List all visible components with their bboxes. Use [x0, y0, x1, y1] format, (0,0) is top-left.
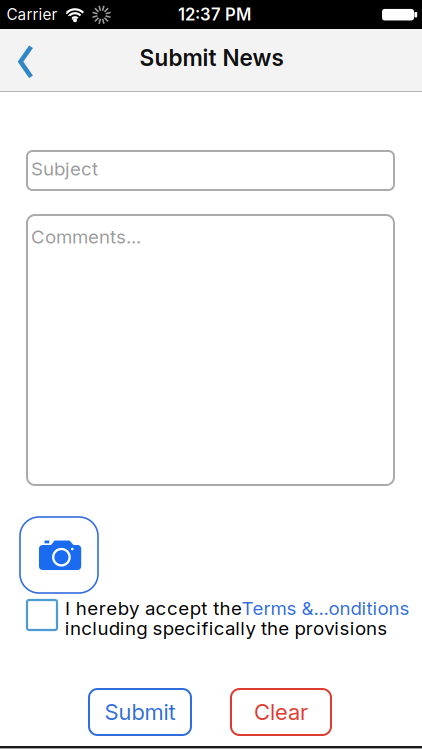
staticText: Comments...	[31, 225, 141, 248]
staticText: Subject	[31, 157, 98, 180]
button[interactable]: Subject	[27, 151, 394, 190]
staticText: Submit	[104, 699, 175, 725]
staticText: 12:37 PM	[178, 4, 251, 24]
button[interactable]: Clear	[231, 689, 331, 735]
button[interactable]: Comments	[27, 215, 394, 485]
staticText: Terms &...onditions	[241, 597, 409, 619]
button[interactable]: Accept Terms	[27, 600, 57, 630]
staticText: I hereby accept the	[65, 597, 242, 619]
button[interactable]: Add Photo	[20, 517, 98, 593]
staticText: Submit News	[139, 44, 283, 71]
button[interactable]: Submit	[89, 689, 191, 735]
staticText: Carrier	[6, 5, 57, 24]
staticText: including specifically the provisions	[65, 617, 387, 639]
staticText: Clear	[254, 699, 308, 725]
button[interactable]: Back	[0, 0, 44, 62]
button[interactable]: Terms &...onditions	[241, 597, 409, 619]
